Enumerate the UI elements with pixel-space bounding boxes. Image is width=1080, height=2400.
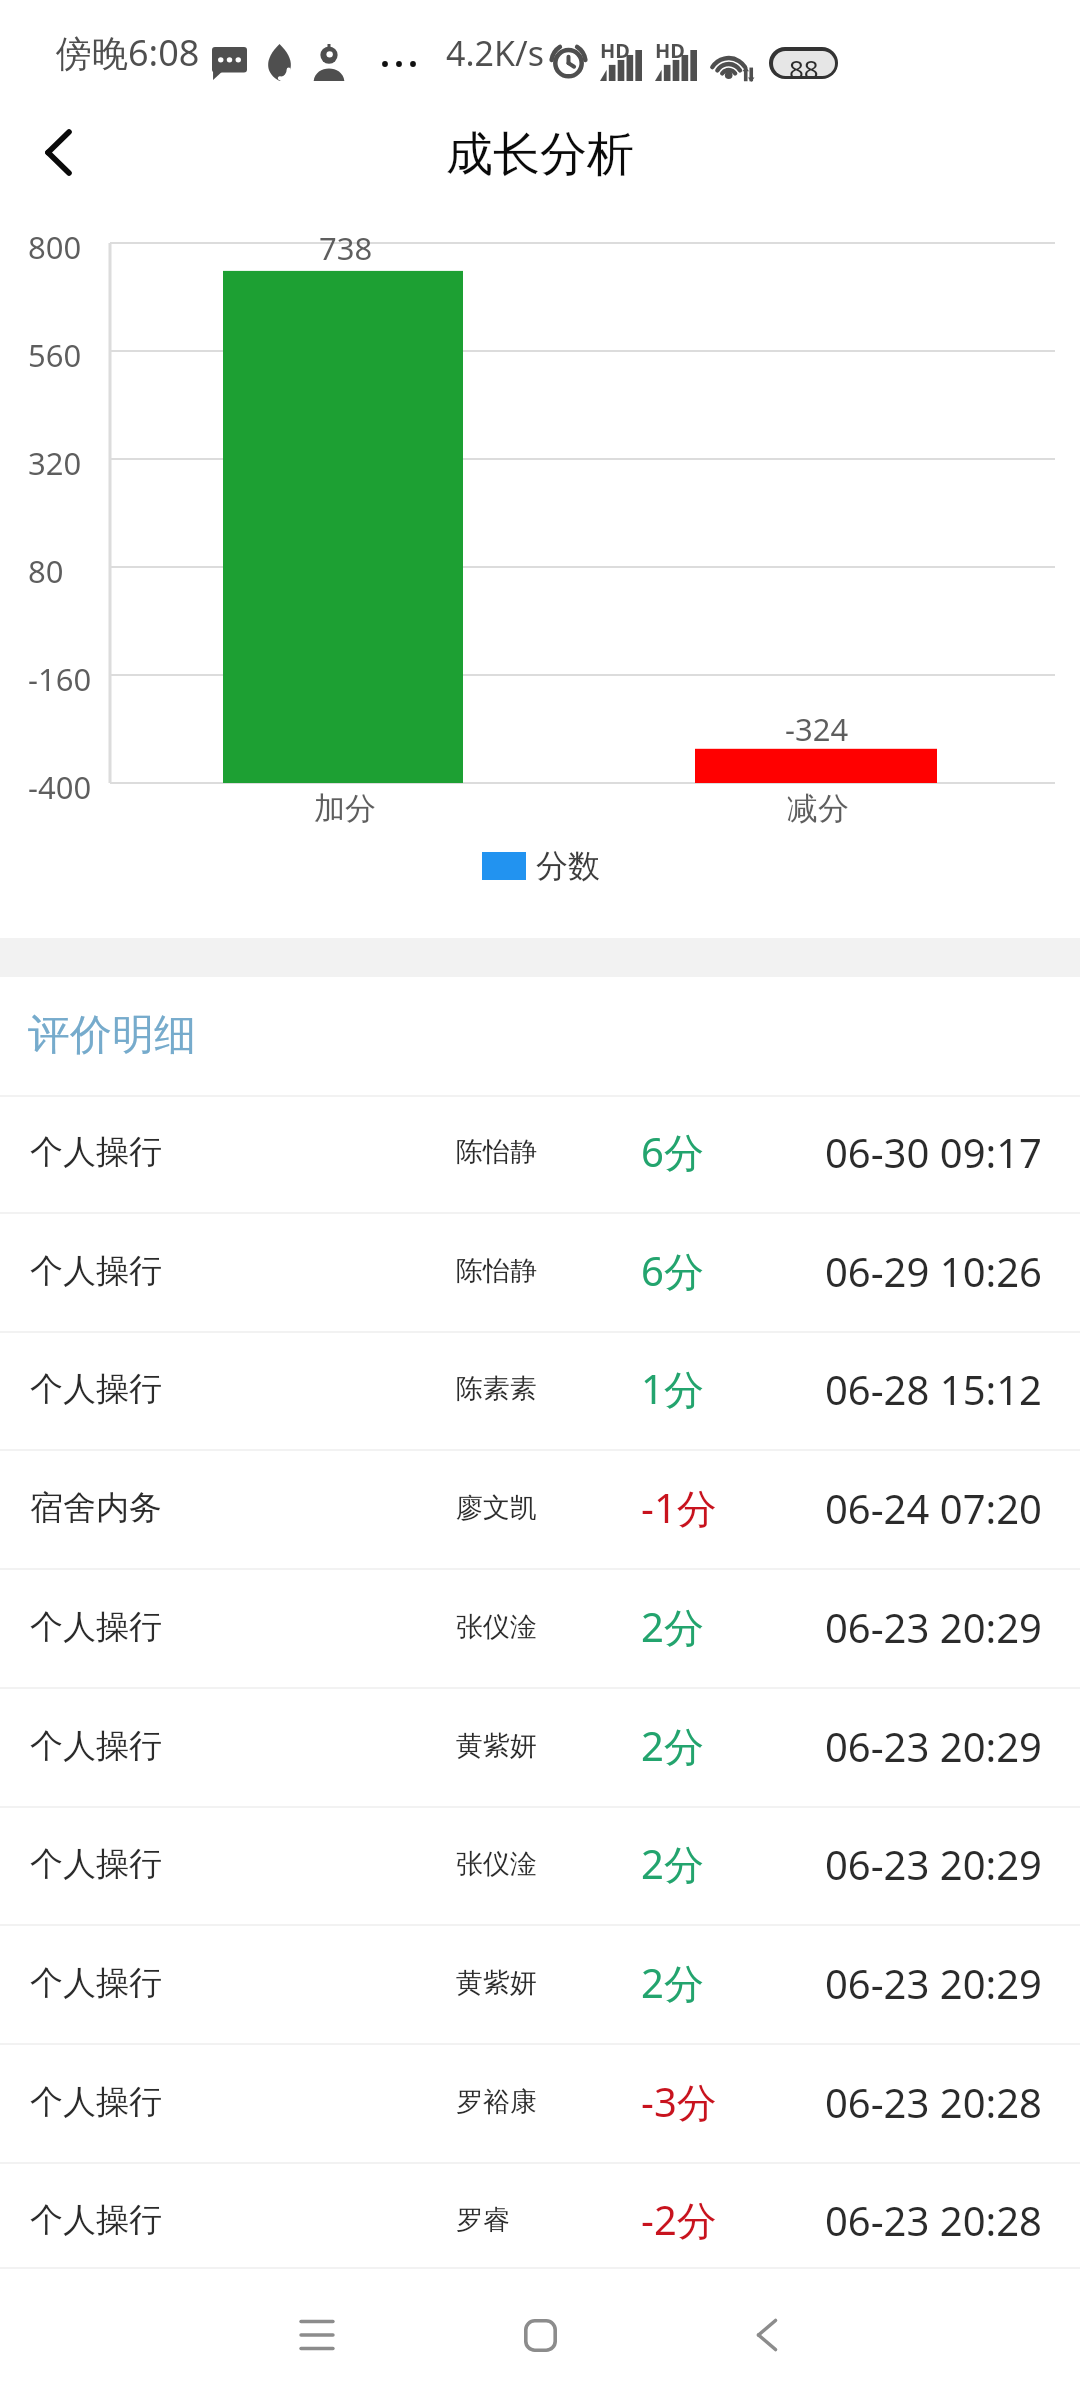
staticText: 加分 (314, 789, 376, 828)
staticText: 2分 (641, 1955, 704, 2010)
staticText: 分数 (536, 846, 600, 886)
staticText: 06-28 15:12 (824, 1362, 1042, 1416)
staticText: 06-23 20:28 (824, 2075, 1042, 2129)
button[interactable]: 个人操行 (0, 1329, 1080, 1448)
staticText: 黄紫妍 (456, 1729, 537, 1763)
staticText: 个人操行 (30, 2081, 162, 2123)
staticText: 06-29 10:26 (824, 1244, 1042, 1298)
staticText: 6分 (641, 1124, 704, 1179)
button[interactable]: Recents (247, 2269, 387, 2400)
button[interactable]: 个人操行 (0, 1567, 1080, 1686)
staticText: 陈怡静 (456, 1254, 537, 1288)
staticText: 张仪淦 (456, 1610, 537, 1644)
staticText: 800 (28, 226, 82, 268)
staticText: -400 (28, 766, 92, 808)
staticText: -324 (785, 708, 849, 750)
staticText: 06-23 20:29 (824, 1600, 1042, 1654)
staticText: 减分 (787, 789, 849, 828)
staticText: -3分 (641, 2074, 717, 2129)
staticText: 傍晚6:08 (56, 28, 200, 77)
staticText: 罗睿 (456, 2203, 510, 2237)
staticText: -2分 (641, 2192, 717, 2247)
staticText: 80 (28, 550, 64, 592)
staticText: 个人操行 (30, 1962, 162, 2004)
staticText: 2分 (641, 1836, 704, 1891)
button[interactable]: 宿舍内务 (0, 1448, 1080, 1567)
staticText: 黄紫妍 (456, 1966, 537, 2000)
staticText: 个人操行 (30, 1368, 162, 1410)
button[interactable]: Home (470, 2269, 610, 2400)
staticText: 06-23 20:29 (824, 1719, 1042, 1773)
staticText: -160 (28, 658, 92, 700)
staticText: 1分 (641, 1361, 704, 1416)
staticText: 06-23 20:28 (824, 2193, 1042, 2247)
staticText: 个人操行 (30, 1131, 162, 1173)
button[interactable]: 个人操行 (0, 1092, 1080, 1211)
button[interactable]: Back (697, 2269, 837, 2400)
staticText: 2分 (641, 1718, 704, 1773)
staticText: HD (655, 37, 685, 64)
staticText: -1分 (641, 1480, 717, 1535)
button[interactable]: Back (3, 100, 113, 200)
staticText: 个人操行 (30, 1725, 162, 1767)
staticText: 738 (319, 227, 373, 269)
staticText: 个人操行 (30, 1843, 162, 1885)
staticText: 4.2K/s (446, 30, 544, 76)
staticText: 06-30 09:17 (824, 1125, 1042, 1179)
staticText: 320 (28, 442, 82, 484)
staticText: 6分 (641, 1243, 704, 1298)
staticText: 560 (28, 334, 82, 376)
staticText: 廖文凯 (456, 1491, 537, 1525)
staticText: 宿舍内务 (30, 1487, 162, 1529)
button[interactable]: 个人操行 (0, 1923, 1080, 2042)
staticText: 06-23 20:29 (824, 1837, 1042, 1891)
staticText: 评价明细 (28, 1009, 196, 1062)
staticText: 张仪淦 (456, 1847, 537, 1881)
staticText: 个人操行 (30, 1606, 162, 1648)
staticText: 06-24 07:20 (824, 1481, 1042, 1535)
button[interactable]: 个人操行 (0, 2160, 1080, 2268)
button[interactable]: 个人操行 (0, 1804, 1080, 1923)
staticText: 罗裕康 (456, 2085, 537, 2119)
staticText: 2分 (641, 1599, 704, 1654)
staticText: HD (600, 37, 630, 64)
staticText: 88 (789, 51, 819, 76)
button[interactable]: 个人操行 (0, 2042, 1080, 2161)
staticText: 陈怡静 (456, 1135, 537, 1169)
staticText: 个人操行 (30, 1250, 162, 1292)
staticText: 06-23 20:29 (824, 1956, 1042, 2010)
staticText: 个人操行 (30, 2199, 162, 2241)
button[interactable]: 个人操行 (0, 1211, 1080, 1330)
button[interactable]: 个人操行 (0, 1686, 1080, 1805)
staticText: 成长分析 (446, 125, 634, 184)
staticText: 陈素素 (456, 1372, 537, 1406)
